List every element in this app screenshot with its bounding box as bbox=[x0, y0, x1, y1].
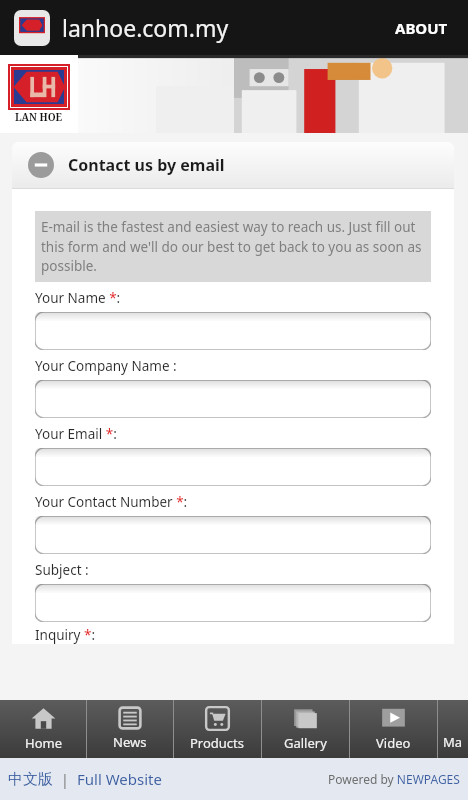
staticText: LAN HOE bbox=[15, 110, 63, 124]
staticText: Inquiry *: bbox=[35, 626, 96, 644]
button[interactable]: Ma bbox=[438, 700, 468, 758]
button[interactable]: Products bbox=[174, 700, 261, 758]
staticText: Your Company Name : bbox=[35, 357, 177, 375]
staticText: Home bbox=[25, 734, 62, 752]
staticText: 中文版 bbox=[8, 770, 53, 789]
button[interactable]: ABOUT bbox=[389, 12, 454, 44]
button[interactable] bbox=[35, 516, 431, 554]
button[interactable]: Video bbox=[350, 700, 437, 758]
staticText: Your Email *: bbox=[35, 425, 117, 443]
staticText: Powered by NEWPAGES bbox=[328, 771, 460, 787]
button[interactable]: Full Website bbox=[77, 769, 162, 789]
staticText: Products bbox=[190, 734, 245, 752]
button[interactable] bbox=[35, 380, 431, 418]
staticText: Contact us by email bbox=[68, 154, 225, 176]
staticText: Gallery bbox=[284, 734, 327, 752]
button[interactable] bbox=[35, 584, 431, 622]
staticText: News bbox=[113, 733, 147, 751]
staticText: Subject : bbox=[35, 561, 89, 579]
staticText: Video bbox=[376, 734, 411, 752]
button[interactable] bbox=[35, 448, 431, 486]
staticText: Your Contact Number *: bbox=[35, 493, 188, 511]
staticText: ABOUT bbox=[395, 18, 448, 38]
button[interactable]: Home bbox=[0, 700, 86, 758]
button[interactable]: Site icon bbox=[14, 10, 50, 46]
staticText: E-mail is the fastest and easiest way to… bbox=[41, 218, 425, 275]
button[interactable]: Contact us by email bbox=[12, 142, 454, 188]
staticText: Ma bbox=[443, 733, 463, 751]
button[interactable]: 中文版 bbox=[8, 770, 53, 789]
button[interactable]: News bbox=[87, 700, 173, 758]
staticText: Your Name *: bbox=[35, 289, 121, 307]
button[interactable] bbox=[35, 312, 431, 350]
staticText: lanhoe.com.my bbox=[62, 12, 229, 43]
staticText: Full Website bbox=[77, 769, 162, 789]
button[interactable]: Gallery bbox=[262, 700, 349, 758]
staticText: | bbox=[53, 769, 77, 789]
